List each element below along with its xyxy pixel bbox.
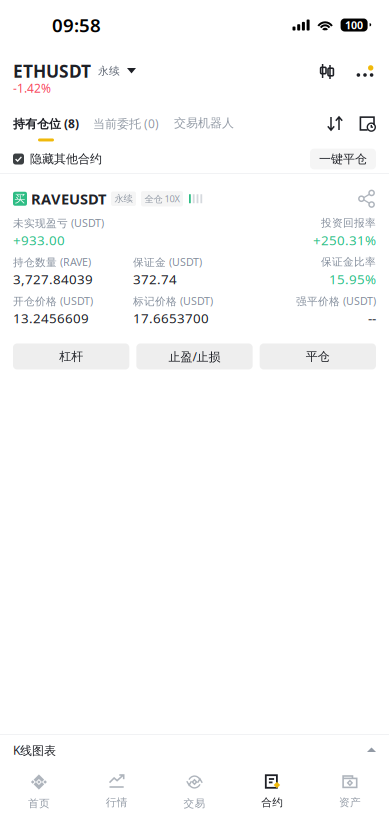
button[interactable]: 止盈/止损 xyxy=(136,343,253,369)
staticText: 100 xyxy=(345,18,363,32)
staticText: 首页 xyxy=(28,797,50,810)
button[interactable]: 排序 xyxy=(327,115,343,131)
button[interactable]: K线图表 xyxy=(0,735,389,765)
staticText: 09:58 xyxy=(52,13,101,37)
button[interactable]: 交易 xyxy=(156,765,233,811)
staticText: 372.74 xyxy=(133,270,177,288)
staticText: 行情 xyxy=(106,796,128,809)
staticText: 资产 xyxy=(339,796,361,809)
staticText: 平仓 xyxy=(306,349,330,364)
staticText: +933.00 xyxy=(13,231,65,249)
staticText: 隐藏其他合约 xyxy=(30,152,102,166)
staticText: 持仓数量 (RAVE) xyxy=(13,255,91,269)
button[interactable]: 更多 xyxy=(354,62,376,80)
button[interactable]: 合约 xyxy=(233,765,311,811)
button[interactable]: 杠杆 xyxy=(13,343,129,369)
staticText: 未实现盈亏 (USDT) xyxy=(13,216,104,230)
button[interactable]: 一键平仓 xyxy=(310,149,376,169)
staticText: 交易 xyxy=(183,797,205,810)
staticText: RAVEUSDT xyxy=(31,189,106,208)
staticText: 永续 xyxy=(114,193,132,204)
button[interactable]: 图表 xyxy=(319,62,335,80)
staticText: 全仓 10X xyxy=(144,192,179,205)
staticText: 15.95% xyxy=(329,270,376,288)
staticText: 标记价格 (USDT) xyxy=(133,294,213,308)
button[interactable]: 行情 xyxy=(78,765,156,811)
staticText: -- xyxy=(368,309,376,327)
button[interactable]: 隐藏其他合约 xyxy=(13,152,102,166)
staticText: 一键平仓 xyxy=(319,152,367,166)
button[interactable]: 分享 xyxy=(358,190,376,208)
staticText: 当前委托 (0) xyxy=(93,115,159,131)
button[interactable]: 历史记录 xyxy=(359,115,376,131)
staticText: 13.2456609 xyxy=(13,309,89,327)
staticText: 合约 xyxy=(261,796,283,809)
staticText: 保证金比率 xyxy=(321,255,376,268)
button[interactable]: 平仓 xyxy=(260,343,376,369)
staticText: 17.6653700 xyxy=(133,309,209,327)
staticText: -1.42% xyxy=(13,80,51,96)
staticText: 强平价格 (USDT) xyxy=(296,294,376,308)
staticText: K线图表 xyxy=(13,742,56,758)
staticText: 交易机器人 xyxy=(174,115,234,130)
staticText: 买 xyxy=(14,192,25,205)
staticText: 永续 xyxy=(98,64,120,77)
staticText: 投资回报率 xyxy=(321,216,376,229)
staticText: +250.31% xyxy=(313,231,376,249)
staticText: 杠杆 xyxy=(59,349,83,364)
button[interactable]: 首页 xyxy=(0,765,78,811)
staticText: 保证金 (USDT) xyxy=(133,255,202,269)
staticText: 3,727.84039 xyxy=(13,270,93,288)
staticText: 止盈/止损 xyxy=(168,348,220,364)
staticText: ETHUSDT xyxy=(13,59,91,82)
staticText: 开仓价格 (USDT) xyxy=(13,294,93,308)
staticText: 持有仓位 (8) xyxy=(13,115,79,131)
button[interactable]: 资产 xyxy=(311,765,389,811)
